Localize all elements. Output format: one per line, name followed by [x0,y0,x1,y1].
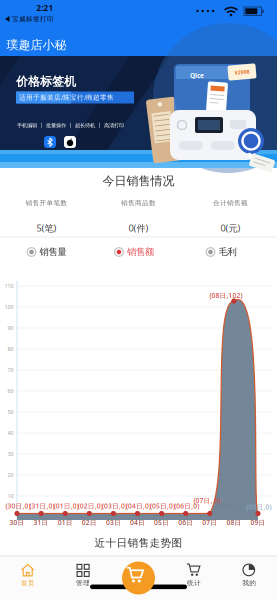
staticText: 50 [7,408,13,416]
staticText: 20 [7,471,13,479]
staticText: 毛利 [218,246,236,258]
button[interactable]: 宝威标签打印 [5,15,54,23]
staticText: 100 [4,303,13,311]
staticText: 70 [7,366,13,374]
staticText: 璞趣店小秘 [6,38,66,52]
staticText: (07日, 0) [193,496,220,505]
staticText: 2:21 [36,3,53,13]
staticText: (03日,0) [102,502,127,510]
staticText: 近十日销售走势图 [94,536,182,549]
staticText: (02日,0) [78,502,103,510]
staticText: 02日 [82,518,97,527]
staticText: (01日,0) [54,502,79,510]
staticText: 08日 [226,518,241,527]
staticText: 销售额 [127,246,154,258]
staticText: 60 [7,387,13,395]
staticText: 管理 [76,579,90,587]
staticText: 03日 [106,518,121,527]
staticText: 30日 [9,518,24,527]
staticText: 07日 [202,518,217,527]
staticText: 价格标签机 [16,74,76,89]
staticText: 统计 [187,579,201,587]
staticText: 0(件) [128,222,148,234]
staticText: 10 [7,492,13,500]
staticText: 适用于服装店/珠宝行/商超零售 [19,93,114,102]
staticText: (06日,0) [174,502,199,510]
button[interactable]: 开单 [121,561,155,595]
staticText: 04日 [130,518,145,527]
button[interactable]: 统计 [186,563,201,587]
staticText: (09日,0) [246,503,271,511]
button[interactable]: 销售额 [114,246,154,258]
staticText: 0(元) [220,222,240,234]
staticText: 05日 [154,518,169,527]
staticText: 销售开单笔数 [25,199,67,207]
staticText: 手机编辑 丨 批量操作 丨 超长待机 丨 高清打印 [17,122,124,129]
staticText: 40 [7,429,13,437]
staticText: 我的 [242,579,256,587]
staticText: (04日,0) [126,502,151,510]
staticText: (31日,0) [30,502,55,510]
staticText: 首页 [21,579,35,587]
button[interactable]: 管理 [76,563,91,587]
staticText: 01日 [58,518,73,527]
staticText: 110 [4,282,13,290]
button[interactable]: 我的 [242,563,257,587]
staticText: 合计销售额 [213,199,248,207]
staticText: 销售商品数 [121,199,156,207]
staticText: 90 [7,324,13,332]
staticText: 31日 [34,518,49,527]
staticText: (08日,0) [216,502,241,510]
button[interactable]: 首页 [20,563,35,587]
button[interactable]: 销售量 [26,246,66,258]
staticText: 销售量 [39,246,66,258]
staticText: ¥2998 [234,68,249,76]
staticText: 30 [7,450,13,458]
staticText: Qice [190,71,204,80]
staticText: 80 [7,345,13,353]
staticText: 06日 [178,518,193,527]
button[interactable]: 价格标签机广告 [0,0,277,600]
staticText: (30日,0) [5,502,30,510]
staticText: 09日 [250,518,265,527]
staticText: (05日,0) [150,502,175,510]
button[interactable]: 毛利 [205,246,236,258]
staticText: 宝威标签打印 [12,15,54,23]
staticText: 5(笔) [36,222,56,234]
staticText: 今日销售情况 [102,174,174,188]
staticText: (08日,102) [209,291,242,300]
